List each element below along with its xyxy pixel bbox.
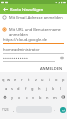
staticText: h [38, 86, 41, 91]
button[interactable]: n [44, 94, 51, 100]
staticText: b [39, 95, 42, 100]
button[interactable]: l [57, 85, 64, 91]
button[interactable]: b [37, 94, 44, 100]
staticText: , [13, 107, 15, 112]
button[interactable]: Backspace [58, 94, 67, 100]
button[interactable]: t [25, 76, 32, 82]
staticText: c [26, 95, 28, 100]
button[interactable]: a [3, 85, 9, 91]
button[interactable]: y [9, 94, 16, 100]
staticText: https://cloud.google.de [3, 37, 64, 42]
staticText: j [46, 86, 48, 91]
button[interactable]: z [32, 76, 39, 82]
staticText: Mit Email-Adresse anmelden [9, 15, 63, 20]
staticText: Konto hinzufügen [10, 7, 44, 12]
button[interactable]: Back [0, 4, 10, 14]
staticText: ANMELDEN [40, 66, 63, 71]
staticText: e [14, 77, 17, 82]
staticText: d [17, 86, 20, 91]
button[interactable]: v [30, 94, 37, 100]
button[interactable]: Show password [59, 55, 64, 60]
button[interactable]: i [46, 76, 53, 82]
button[interactable]: q [0, 76, 6, 82]
staticText: i [49, 77, 51, 82]
staticText: o [55, 77, 58, 82]
button[interactable]: d [15, 85, 22, 91]
button[interactable]: Mit Email-Adresse anmelden [0, 15, 67, 20]
staticText: g [31, 86, 34, 91]
staticText: y [11, 95, 14, 100]
staticText: t [28, 77, 30, 82]
staticText: z [35, 77, 37, 82]
staticText: Mit URL und Benutzername anmelden [9, 27, 61, 37]
staticText: v [32, 95, 35, 100]
staticText: m [53, 95, 57, 100]
button[interactable]: Mit URL und Benutzername anmelden [0, 27, 67, 37]
button[interactable]: , [11, 106, 16, 113]
button[interactable]: s [9, 85, 15, 91]
button[interactable]: u [39, 76, 46, 82]
button[interactable]: h [36, 85, 43, 91]
staticText: r [21, 77, 23, 82]
staticText: u [41, 77, 44, 82]
staticText: . [54, 107, 56, 112]
button[interactable]: j [43, 85, 50, 91]
button[interactable]: Shift [0, 94, 9, 100]
staticText: k [52, 86, 55, 91]
button[interactable]: c [23, 94, 30, 100]
staticText: ?123 [2, 108, 9, 112]
staticText: w [7, 77, 11, 82]
staticText: x [18, 95, 21, 100]
button[interactable]: k [50, 85, 57, 91]
button[interactable]: r [18, 76, 25, 82]
button[interactable]: e [12, 76, 18, 82]
button[interactable]: ANMELDEN [36, 65, 67, 72]
staticText: l [60, 86, 62, 91]
button[interactable]: m [51, 94, 58, 100]
button[interactable]: p [60, 76, 67, 82]
button[interactable]: o [53, 76, 60, 82]
staticText: n [46, 95, 49, 100]
button[interactable]: ?123 [0, 106, 11, 113]
staticText: homeadministrator [3, 47, 64, 52]
button[interactable]: g [29, 85, 36, 91]
button[interactable]: x [16, 94, 23, 100]
button[interactable]: w [6, 76, 12, 82]
staticText: a [5, 86, 8, 91]
staticText: s [11, 86, 13, 91]
button[interactable]: . [52, 106, 58, 113]
staticText: f [25, 86, 27, 91]
button[interactable]: Enter [60, 107, 66, 113]
button[interactable]: f [22, 85, 29, 91]
staticText: q [2, 77, 5, 82]
staticText: p [62, 77, 65, 82]
